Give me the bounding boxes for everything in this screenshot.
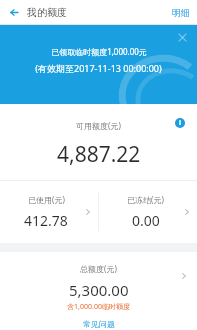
button[interactable]: 已冻结(元) bbox=[99, 181, 197, 243]
button[interactable]: 常见问题 bbox=[83, 319, 115, 329]
staticText: 5,300.00 bbox=[69, 280, 129, 300]
button[interactable]: 总额度(元) bbox=[0, 252, 197, 330]
staticText: i bbox=[179, 118, 182, 128]
button[interactable]: Info bbox=[172, 115, 188, 131]
button[interactable]: 已使用(元) bbox=[0, 181, 98, 243]
staticText: 明细 bbox=[172, 7, 190, 18]
button[interactable]: Back bbox=[4, 2, 24, 22]
staticText: 我的额度 bbox=[27, 6, 67, 19]
staticText: 0.00 bbox=[132, 211, 160, 230]
staticText: 总额度(元) bbox=[80, 263, 117, 274]
staticText: 412.78 bbox=[24, 211, 68, 230]
staticText: (有效期至2017-11-13 00:00:00) bbox=[35, 62, 162, 74]
staticText: 含1,000.00临时额度 bbox=[67, 302, 130, 312]
button[interactable]: Close bbox=[175, 30, 189, 44]
staticText: 已领取临时额度1,000.00元 bbox=[51, 46, 147, 57]
button[interactable]: 明细 bbox=[172, 7, 190, 18]
staticText: 常见问题 bbox=[83, 319, 115, 329]
staticText: 已使用(元) bbox=[28, 194, 65, 205]
staticText: 已冻结(元) bbox=[127, 194, 164, 205]
staticText: 可用额度(元) bbox=[76, 120, 121, 131]
staticText: 4,887.22 bbox=[57, 140, 141, 169]
